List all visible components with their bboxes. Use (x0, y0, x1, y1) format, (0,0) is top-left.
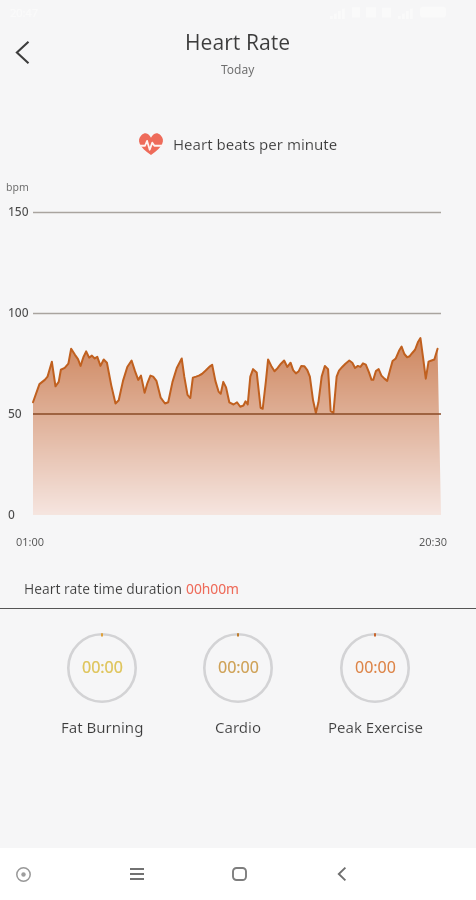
staticText: 0 (8, 506, 15, 522)
button[interactable]: 00:00 (203, 633, 273, 703)
staticText: Heart Rate (185, 28, 291, 57)
button[interactable]: 00:00 (67, 633, 137, 703)
staticText: 00:00 (218, 656, 259, 678)
button[interactable]: Back (0, 28, 46, 76)
button[interactable]: Home (213, 848, 265, 900)
staticText: bpm (6, 180, 29, 194)
staticText: Peak Exercise (328, 717, 423, 737)
staticText: 00:00 (82, 656, 123, 678)
staticText: 150 (8, 203, 29, 219)
staticText: Cardio (215, 717, 261, 737)
button[interactable]: Recent apps (111, 848, 163, 900)
staticText: Heart rate time duration (24, 579, 186, 598)
staticText: 100 (8, 304, 29, 320)
staticText: Fat Burning (61, 717, 144, 737)
button[interactable]: 00:00 (340, 633, 410, 703)
staticText: 20:30 (419, 534, 448, 549)
button[interactable]: Back (316, 848, 368, 900)
staticText: 00:00 (355, 656, 396, 678)
button[interactable]: Assistant (0, 848, 49, 900)
staticText: 01:00 (16, 534, 45, 549)
staticText: Heart beats per minute (173, 134, 338, 154)
staticText: 00h00m (186, 579, 239, 598)
staticText: 50 (8, 405, 22, 421)
staticText: Today (221, 61, 255, 77)
